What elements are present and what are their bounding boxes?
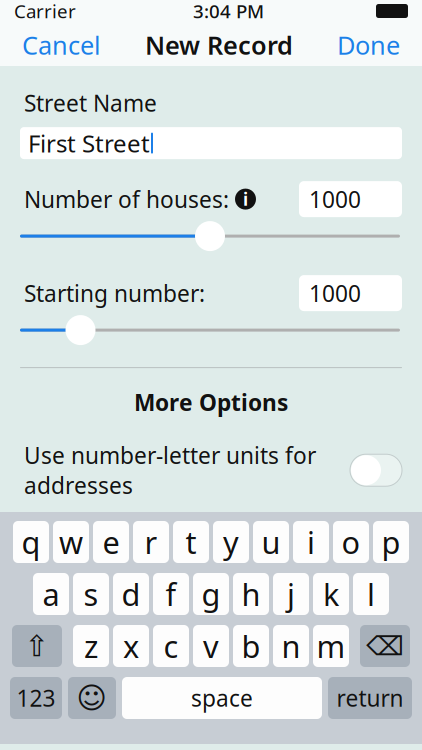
- staticText: b: [241, 626, 260, 666]
- button[interactable]: u: [253, 521, 289, 563]
- staticText: p: [381, 522, 400, 562]
- button[interactable]: Cancel: [12, 20, 111, 70]
- staticText: New Record: [145, 28, 293, 62]
- button[interactable]: 123: [10, 677, 62, 719]
- button[interactable]: e: [93, 521, 129, 563]
- staticText: 3:04 PM: [193, 0, 264, 23]
- button[interactable]: q: [13, 521, 49, 563]
- button[interactable]: n: [273, 625, 309, 667]
- button[interactable]: Done: [327, 20, 410, 70]
- staticText: Cancel: [22, 28, 101, 62]
- button[interactable]: v: [193, 625, 229, 667]
- staticText: n: [281, 626, 300, 666]
- button[interactable]: f: [153, 573, 189, 615]
- button[interactable]: b: [233, 625, 269, 667]
- staticText: ☺: [76, 681, 107, 715]
- button[interactable]: j: [273, 573, 309, 615]
- staticText: Starting number:: [24, 278, 205, 308]
- staticText: 123: [16, 683, 55, 713]
- staticText: c: [163, 626, 178, 666]
- staticText: z: [84, 626, 98, 666]
- staticText: j: [287, 574, 295, 614]
- button[interactable]: l: [353, 573, 389, 615]
- button[interactable]: Emoji: [68, 677, 116, 719]
- button[interactable]: s: [73, 573, 109, 615]
- button[interactable]: o: [333, 521, 369, 563]
- button[interactable]: y: [213, 521, 249, 563]
- staticText: s: [83, 574, 98, 614]
- staticText: m: [316, 626, 345, 666]
- button[interactable]: Shift: [12, 625, 62, 667]
- button[interactable]: g: [193, 573, 229, 615]
- staticText: x: [123, 626, 139, 666]
- staticText: g: [201, 574, 220, 614]
- staticText: 1000: [309, 278, 361, 308]
- button[interactable]: Information about number of houses: [229, 182, 262, 217]
- staticText: f: [165, 574, 176, 614]
- button[interactable]: m: [313, 625, 349, 667]
- staticText: i: [243, 188, 248, 211]
- button[interactable]: i: [293, 521, 329, 563]
- staticText: u: [261, 522, 280, 562]
- staticText: i: [307, 522, 315, 562]
- staticText: More Options: [134, 387, 288, 417]
- staticText: q: [21, 522, 40, 562]
- staticText: ⌫: [366, 631, 404, 661]
- staticText: First Street: [28, 127, 150, 159]
- staticText: h: [241, 574, 260, 614]
- staticText: 1000: [309, 184, 361, 214]
- button[interactable]: Use number-letter units for addresses: [350, 454, 402, 486]
- button[interactable]: t: [173, 521, 209, 563]
- button[interactable]: r: [133, 521, 169, 563]
- staticText: o: [341, 522, 360, 562]
- button[interactable]: space: [122, 677, 322, 719]
- button[interactable]: d: [113, 573, 149, 615]
- button[interactable]: a: [33, 573, 69, 615]
- button[interactable]: c: [153, 625, 189, 667]
- staticText: e: [102, 522, 119, 562]
- staticText: Use number-letter units for addresses: [24, 440, 316, 500]
- staticText: Number of houses:: [24, 184, 229, 214]
- button[interactable]: return: [328, 677, 412, 719]
- button[interactable]: k: [313, 573, 349, 615]
- staticText: r: [144, 522, 157, 562]
- staticText: return: [336, 683, 403, 713]
- staticText: t: [185, 522, 196, 562]
- staticText: Street Name: [24, 88, 157, 118]
- staticText: Done: [337, 28, 400, 62]
- button[interactable]: w: [53, 521, 89, 563]
- staticText: l: [367, 574, 375, 614]
- staticText: w: [59, 522, 83, 562]
- staticText: Carrier: [14, 0, 76, 23]
- button[interactable]: Delete: [360, 625, 410, 667]
- staticText: k: [323, 574, 339, 614]
- button[interactable]: h: [233, 573, 269, 615]
- staticText: d: [121, 574, 140, 614]
- button[interactable]: p: [373, 521, 409, 563]
- staticText: space: [191, 683, 253, 713]
- staticText: a: [42, 574, 59, 614]
- button[interactable]: x: [113, 625, 149, 667]
- staticText: v: [203, 626, 219, 666]
- staticText: y: [223, 522, 239, 562]
- button[interactable]: z: [73, 625, 109, 667]
- staticText: ⇧: [24, 629, 49, 663]
